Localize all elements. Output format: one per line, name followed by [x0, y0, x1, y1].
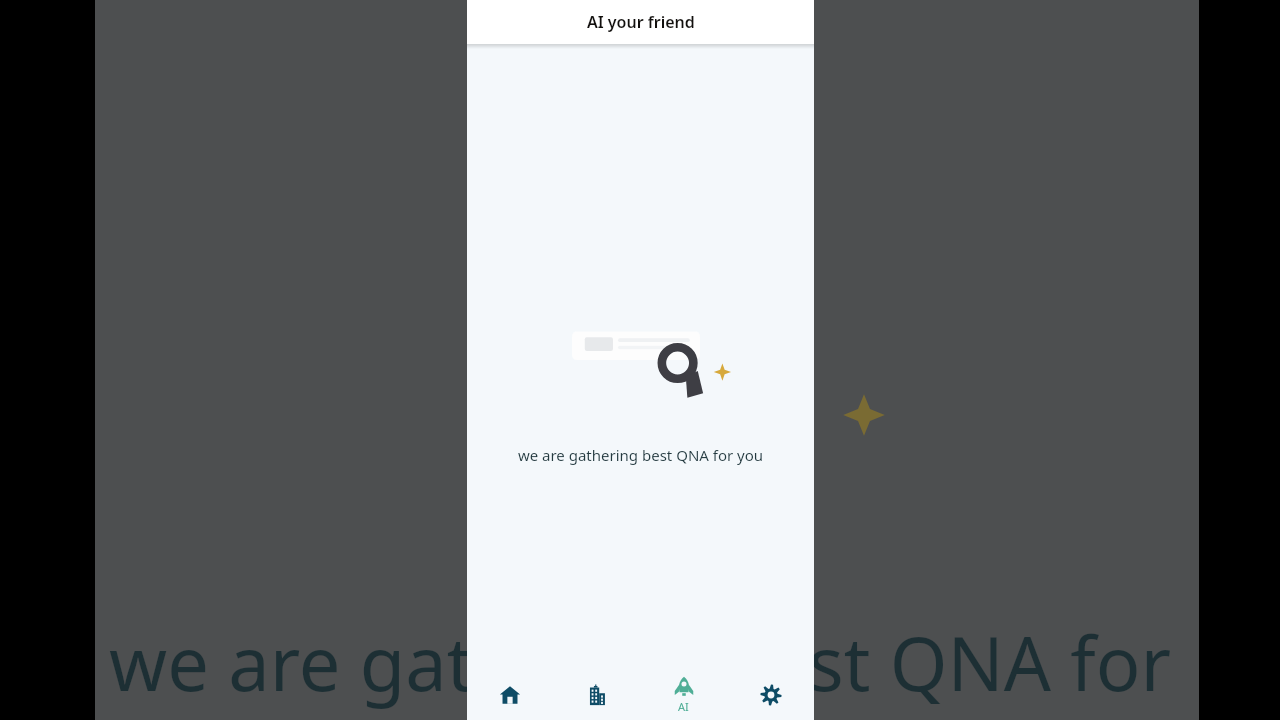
button[interactable]: Settings	[727, 670, 814, 720]
button[interactable]: Organization	[553, 670, 640, 720]
button[interactable]: Home	[467, 670, 553, 720]
staticText: AI your friend	[587, 11, 695, 33]
staticText: AI	[678, 699, 689, 714]
staticText: we are gathering best QNA for you	[109, 612, 1213, 713]
button[interactable]: AI	[640, 670, 727, 720]
staticText: we are gathering best QNA for you	[467, 445, 814, 465]
